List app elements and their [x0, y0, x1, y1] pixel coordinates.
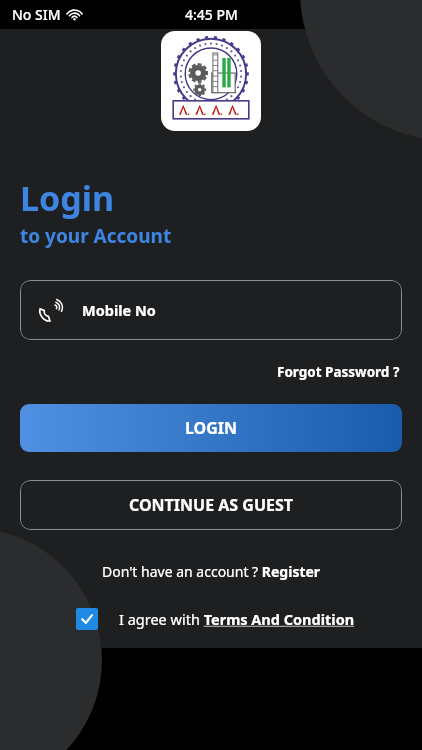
- staticText: No SIM: [12, 5, 61, 24]
- button[interactable]: I agree with Terms And Condition: [76, 608, 422, 630]
- staticText: CONTINUE AS GUEST: [129, 494, 294, 516]
- other: Mobile number: [38, 297, 64, 323]
- button[interactable]: LOGIN: [20, 404, 402, 452]
- staticText: to your Account: [20, 223, 172, 249]
- staticText: Mobile No: [82, 300, 156, 320]
- staticText: Forgot Password ?: [277, 363, 400, 381]
- staticText: Login: [20, 175, 115, 221]
- staticText: I agree with Terms And Condition: [119, 609, 355, 629]
- button[interactable]: Don't have an account ? Register: [98, 559, 325, 584]
- staticText: Don't have an account ? Register: [102, 562, 321, 581]
- button[interactable]: CONTINUE AS GUEST: [20, 480, 402, 530]
- staticText: LOGIN: [185, 417, 238, 439]
- button[interactable]: Forgot Password ?: [275, 360, 402, 384]
- staticText: 4:45 PM: [185, 5, 238, 24]
- button[interactable]: Mobile number: [20, 280, 402, 340]
